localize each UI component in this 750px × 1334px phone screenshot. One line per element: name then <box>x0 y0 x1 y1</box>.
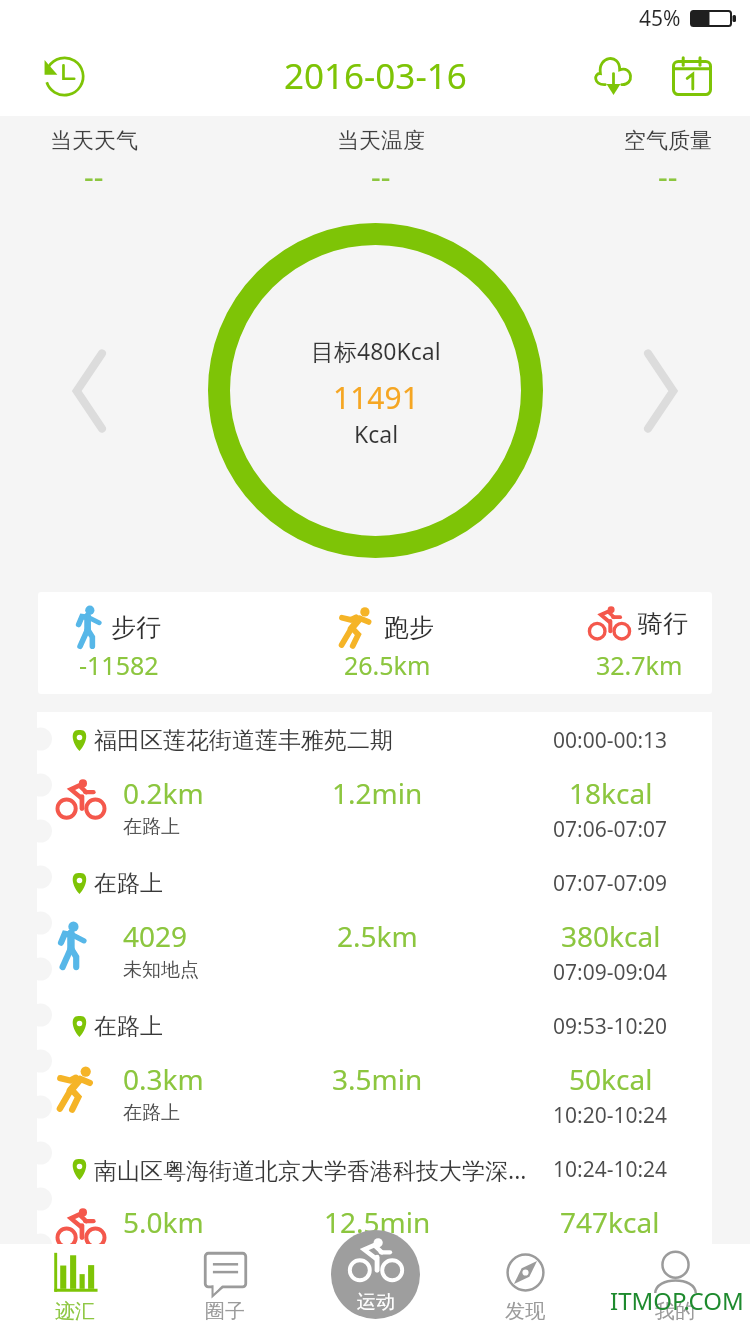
staticText: 2.5km <box>337 917 418 955</box>
button[interactable]: 在路上 <box>37 855 712 911</box>
staticText: 380kcal <box>561 917 661 955</box>
staticText: 在路上 <box>94 1012 163 1041</box>
button[interactable]: Next day <box>630 341 692 441</box>
staticText: Kcal <box>354 418 399 449</box>
staticText: ITMOP.COM <box>610 1284 744 1317</box>
button[interactable]: 步行 <box>75 592 195 694</box>
button[interactable]: Previous day <box>58 341 120 441</box>
button[interactable]: 我的 <box>600 1240 750 1334</box>
staticText: 10:20-10:24 <box>553 1101 668 1130</box>
staticText: -- <box>371 156 391 197</box>
button[interactable] <box>37 1054 712 1141</box>
staticText: 未知地点 <box>123 958 199 982</box>
button[interactable]: 当天天气 <box>50 122 138 206</box>
staticText: 07:09-09:04 <box>553 958 668 987</box>
staticText: 运动 <box>357 1290 395 1314</box>
staticText: 18kcal <box>569 774 653 812</box>
staticText: 11491 <box>333 377 419 418</box>
button[interactable]: 在路上 <box>37 998 712 1054</box>
staticText: 骑行 <box>638 608 688 639</box>
button[interactable]: Download <box>583 46 643 106</box>
staticText: -- <box>658 156 678 197</box>
staticText: 空气质量 <box>624 127 712 155</box>
button[interactable]: 骑行 <box>589 592 709 694</box>
staticText: 32.7km <box>596 648 683 682</box>
staticText: 圈子 <box>205 1299 245 1324</box>
button[interactable]: 南山区粤海街道北京大学香港科技大学深... <box>37 1141 712 1197</box>
staticText: 迹汇 <box>55 1299 95 1324</box>
staticText: 0.2km <box>123 774 204 812</box>
staticText: 在路上 <box>94 869 163 898</box>
button[interactable]: 福田区莲花街道莲丰雅苑二期 <box>37 712 712 768</box>
staticText: 当天温度 <box>337 127 425 155</box>
staticText: 10:24-10:24 <box>553 1155 668 1184</box>
staticText: 南山区粤海街道北京大学香港科技大学深... <box>94 1154 527 1185</box>
button[interactable]: 圈子 <box>150 1240 300 1334</box>
staticText: 07:07-07:09 <box>553 869 668 898</box>
staticText: 在路上 <box>123 1101 180 1125</box>
staticText: 步行 <box>111 612 161 643</box>
staticText: 12.5min <box>324 1203 431 1241</box>
button[interactable] <box>37 1197 712 1284</box>
button[interactable]: 跑步 <box>339 592 459 694</box>
staticText: 福田区莲花街道莲丰雅苑二期 <box>94 726 393 755</box>
staticText: 50kcal <box>569 1060 653 1098</box>
button[interactable]: 发现 <box>450 1240 600 1334</box>
button[interactable] <box>37 768 712 855</box>
staticText: 5.0km <box>123 1203 204 1241</box>
button[interactable]: 迹汇 <box>0 1240 150 1334</box>
staticText: 发现 <box>505 1299 545 1324</box>
staticText: 我的 <box>655 1299 695 1324</box>
staticText: 26.5km <box>344 648 431 682</box>
staticText: 09:53-10:20 <box>553 1012 668 1041</box>
staticText: 45% <box>639 4 681 33</box>
staticText: 4029 <box>123 917 188 955</box>
staticText: 2016-03-16 <box>284 52 467 100</box>
staticText: -11582 <box>79 648 159 682</box>
staticText: 0.3km <box>123 1060 204 1098</box>
staticText: 跑步 <box>384 612 434 643</box>
button[interactable]: Start activity <box>331 1230 420 1319</box>
button[interactable]: 当天温度 <box>337 122 425 206</box>
staticText: 当天天气 <box>50 127 138 155</box>
button[interactable]: 空气质量 <box>624 122 712 206</box>
button[interactable]: Calendar <box>662 46 722 106</box>
button[interactable] <box>37 911 712 998</box>
staticText: -- <box>84 156 104 197</box>
staticText: 目标480Kcal <box>311 335 441 366</box>
staticText: 07:06-07:07 <box>553 815 668 844</box>
staticText: 00:00-00:13 <box>553 726 668 755</box>
staticText: 747kcal <box>560 1203 660 1241</box>
staticText: 1.2min <box>332 774 423 812</box>
staticText: 3.5min <box>332 1060 423 1098</box>
staticText: 在路上 <box>123 815 180 839</box>
button[interactable]: History <box>34 46 94 106</box>
